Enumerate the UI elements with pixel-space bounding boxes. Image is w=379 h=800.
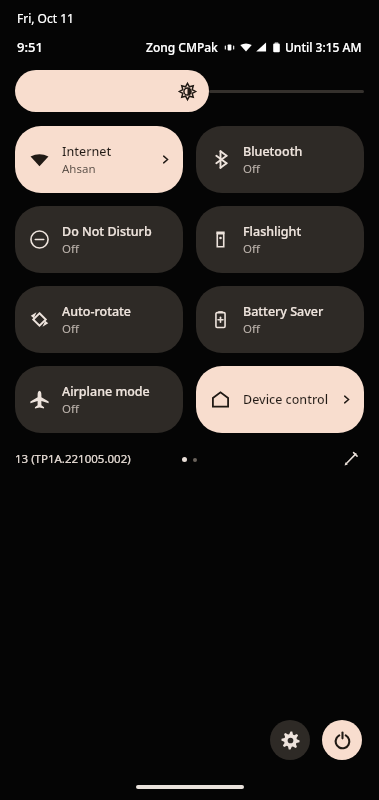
staticText: Flashlight [243, 223, 302, 240]
staticText: Do Not Disturb [62, 223, 152, 240]
staticText: Device control [243, 391, 329, 408]
staticText: Battery Saver [243, 303, 324, 320]
button[interactable]: Edit tiles [338, 446, 364, 472]
staticText: Off [243, 241, 260, 257]
staticText: Off [243, 321, 260, 337]
staticText: Fri, Oct 11 [17, 10, 74, 26]
button[interactable]: Auto-rotate [15, 286, 183, 353]
button[interactable]: Do Not Disturb [15, 206, 183, 273]
staticText: Until 3:15 AM [285, 39, 362, 55]
button[interactable]: Brightness [15, 70, 209, 112]
button[interactable]: Settings [270, 720, 310, 760]
button[interactable]: Bluetooth [196, 126, 364, 193]
staticText: 9:51 [17, 38, 43, 56]
staticText: Off [62, 401, 79, 417]
button[interactable]: Flashlight [196, 206, 364, 273]
staticText: Auto-rotate [62, 303, 132, 320]
staticText: Bluetooth [243, 143, 303, 160]
staticText: Off [62, 321, 79, 337]
staticText: Off [243, 161, 260, 177]
button[interactable]: Power [322, 720, 362, 760]
button[interactable]: Airplane mode [15, 366, 183, 433]
staticText: Ahsan [62, 161, 96, 177]
staticText: Off [62, 241, 79, 257]
staticText: Airplane mode [62, 383, 150, 400]
button[interactable]: Internet [15, 126, 183, 193]
button[interactable]: Device control [196, 366, 364, 433]
button[interactable]: Battery Saver [196, 286, 364, 353]
staticText: Internet [62, 143, 112, 160]
staticText: Zong CMPak [146, 39, 218, 55]
staticText: 13 (TP1A.221005.002) [15, 451, 131, 467]
